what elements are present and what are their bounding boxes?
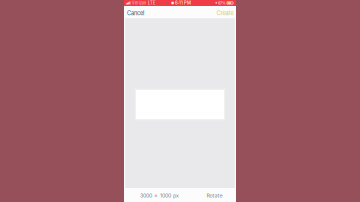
button[interactable]: Cancel [124, 6, 147, 18]
button[interactable]: 3000 x 1000 px [135, 188, 183, 202]
button[interactable]: Rotate [202, 188, 226, 202]
staticText: 67% [218, 1, 226, 5]
staticText: 3000 x 1000 px [140, 192, 179, 199]
button[interactable]: Create [214, 6, 236, 18]
staticText: Rotate [206, 192, 222, 199]
staticText: LTE [148, 0, 155, 5]
staticText: 6:11 PM [175, 0, 191, 6]
staticText: Cancel [127, 10, 144, 17]
staticText: Verizon [132, 0, 146, 5]
staticText: Create [216, 10, 233, 17]
